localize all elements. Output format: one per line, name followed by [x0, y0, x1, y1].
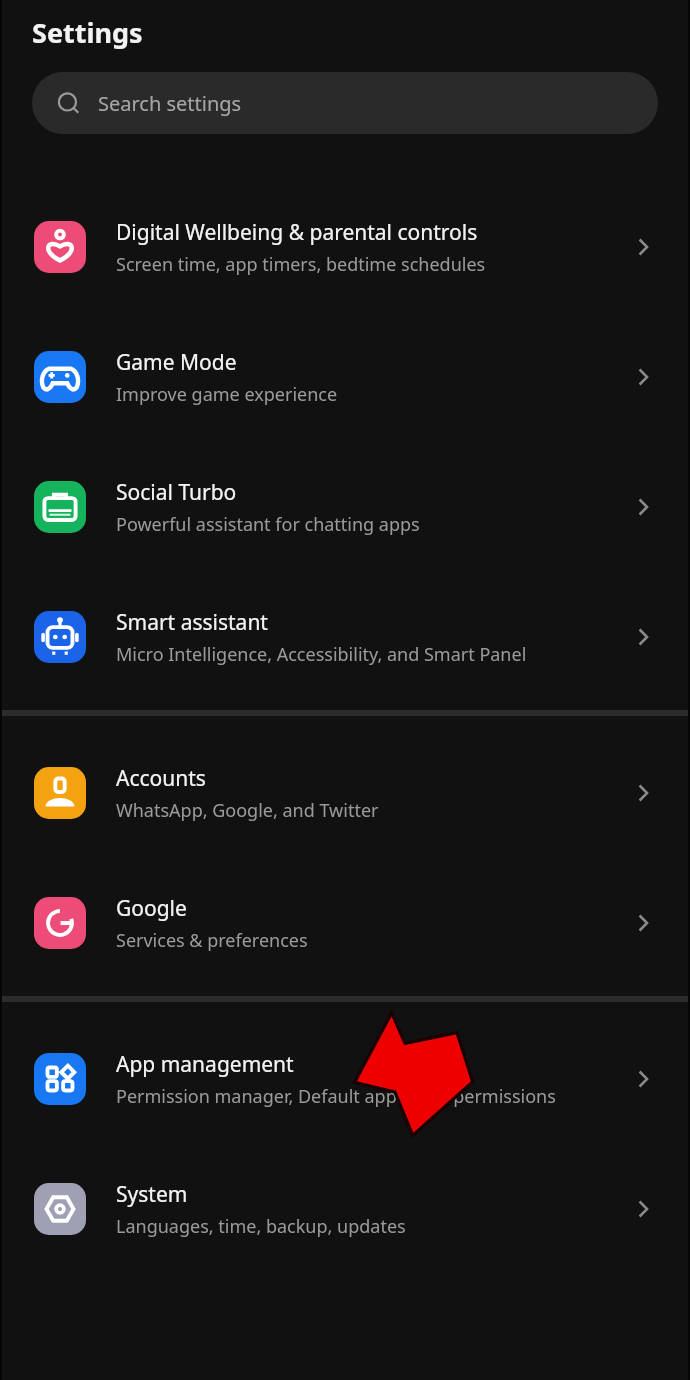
staticText: Digital Wellbeing & parental controls: [116, 218, 478, 247]
button[interactable]: Search settings: [32, 72, 658, 134]
staticText: Services & preferences: [116, 928, 308, 953]
other: Game Mode: [626, 360, 660, 394]
staticText: Micro Intelligence, Accessibility, and S…: [116, 642, 527, 667]
other: App management: [626, 1062, 660, 1096]
staticText: System: [116, 1180, 188, 1209]
staticText: Accounts: [116, 764, 206, 793]
staticText: Languages, time, backup, updates: [116, 1214, 406, 1239]
other: System: [626, 1192, 660, 1226]
other: Social Turbo: [626, 490, 660, 524]
other: Google: [626, 906, 660, 940]
staticText: WhatsApp, Google, and Twitter: [116, 798, 379, 823]
staticText: Improve game experience: [116, 382, 338, 407]
staticText: Search settings: [98, 90, 242, 117]
button[interactable]: App management: [2, 1014, 688, 1144]
staticText: Screen time, app timers, bedtime schedul…: [116, 252, 486, 277]
button[interactable]: Social Turbo: [2, 442, 688, 572]
other: Digital Wellbeing & parental controls: [626, 230, 660, 264]
button[interactable]: Game Mode: [2, 312, 688, 442]
staticText: Powerful assistant for chatting apps: [116, 512, 420, 537]
staticText: App management: [116, 1050, 294, 1079]
staticText: Google: [116, 894, 187, 923]
other: Accounts: [626, 776, 660, 810]
staticText: Settings: [32, 14, 143, 51]
staticText: Smart assistant: [116, 608, 268, 637]
other: Smart assistant: [626, 620, 660, 654]
staticText: Social Turbo: [116, 478, 237, 507]
staticText: Permission manager, Default apps, App pe…: [116, 1084, 556, 1109]
staticText: Game Mode: [116, 348, 237, 377]
button[interactable]: System: [2, 1144, 688, 1274]
button[interactable]: Accounts: [2, 728, 688, 858]
button[interactable]: Smart assistant: [2, 572, 688, 702]
button[interactable]: Digital Wellbeing & parental controls: [2, 182, 688, 312]
button[interactable]: Google: [2, 858, 688, 988]
